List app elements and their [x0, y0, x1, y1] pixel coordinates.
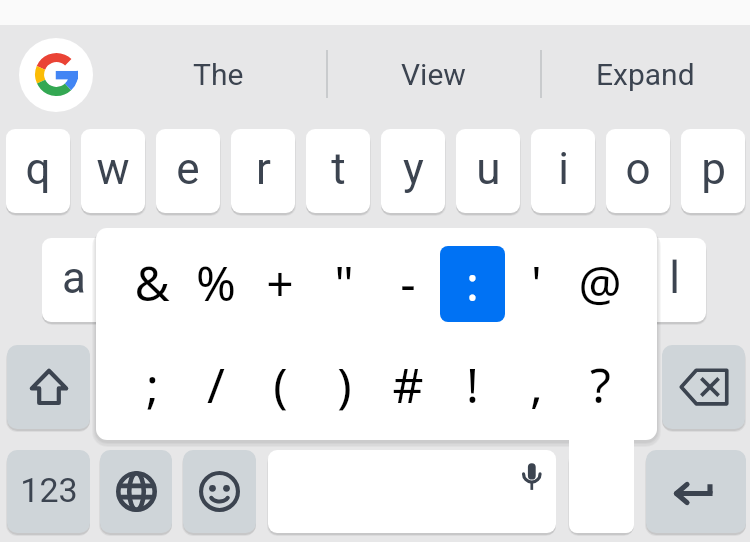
button[interactable]: h [417, 238, 481, 322]
staticText: u [476, 143, 501, 195]
button[interactable]: g [342, 238, 406, 322]
staticText: i [558, 143, 569, 195]
button[interactable]: Expand [540, 32, 750, 118]
button[interactable]: ( [248, 336, 312, 436]
button[interactable]: Google [19, 38, 93, 112]
button[interactable]: z [117, 345, 181, 429]
staticText: ' [531, 250, 542, 315]
staticText: ) [337, 352, 352, 417]
staticText: ! [466, 352, 479, 417]
button[interactable]: Backspace [662, 345, 745, 429]
button[interactable]: y [381, 129, 445, 213]
button[interactable]: e [156, 129, 220, 213]
button[interactable]: n [492, 345, 556, 429]
staticText: ( [273, 352, 288, 417]
staticText: Expand [596, 57, 695, 92]
button[interactable]: ) [312, 336, 376, 436]
staticText: d [212, 252, 237, 304]
button[interactable]: d [192, 238, 256, 322]
staticText: q [25, 143, 51, 195]
button[interactable]: ; [120, 336, 184, 436]
button[interactable] [440, 246, 505, 322]
button[interactable]: u [456, 129, 520, 213]
button[interactable]: a [42, 238, 106, 322]
button[interactable]: ! [440, 336, 504, 436]
button[interactable]: @ [568, 234, 632, 334]
button[interactable]: q [6, 129, 70, 213]
button[interactable]: o [606, 129, 670, 213]
button[interactable]: b [417, 345, 481, 429]
staticText: ; [146, 352, 159, 417]
other: Voice input [521, 462, 543, 491]
button[interactable]: ? [568, 336, 632, 436]
button[interactable]: ' [504, 234, 568, 334]
staticText: t [331, 143, 346, 195]
button[interactable]: Space [268, 450, 556, 533]
button[interactable]: Change language [100, 450, 172, 533]
button[interactable]: p [681, 129, 745, 213]
staticText: % [196, 250, 236, 315]
button[interactable]: View [328, 32, 538, 118]
button[interactable]: Enter [646, 450, 746, 533]
button[interactable]: Shift [7, 345, 90, 429]
button[interactable]: r [231, 129, 295, 213]
staticText: m [580, 359, 619, 411]
staticText: k [588, 252, 611, 304]
staticText: z [138, 359, 160, 411]
button[interactable]: Emoji [183, 450, 256, 533]
button[interactable]: s [117, 238, 181, 322]
staticText: / [207, 352, 225, 417]
staticText: h [437, 252, 462, 304]
button[interactable]: c [267, 345, 331, 429]
button[interactable]: + [248, 234, 312, 334]
button[interactable]: t [306, 129, 370, 213]
button[interactable]: f [267, 238, 331, 322]
staticText: y [403, 143, 424, 195]
staticText: n [512, 359, 537, 411]
staticText: , [530, 352, 543, 417]
button[interactable]: Symbols [7, 450, 90, 533]
staticText: 123 [20, 470, 78, 510]
button[interactable]: / [184, 336, 248, 436]
button[interactable]: i [531, 129, 595, 213]
button[interactable]: , [504, 336, 568, 436]
button[interactable]: l [642, 238, 706, 322]
staticText: a [62, 252, 86, 304]
button[interactable]: % [184, 234, 248, 334]
staticText: - [400, 250, 416, 315]
staticText: e [176, 143, 200, 195]
button[interactable]: & [120, 234, 184, 334]
staticText: p [701, 143, 726, 195]
button[interactable]: # [376, 336, 440, 436]
staticText: The [193, 57, 244, 92]
button[interactable]: The [113, 32, 323, 118]
button[interactable]: : [440, 234, 504, 334]
staticText: @ [578, 250, 622, 315]
staticText: + [266, 250, 294, 315]
button[interactable]: m [567, 345, 631, 429]
button[interactable]: x [192, 345, 256, 429]
button[interactable]: - [376, 234, 440, 334]
staticText: ? [590, 352, 611, 417]
staticText: View [401, 57, 466, 92]
button[interactable]: j [492, 238, 556, 322]
staticText: r [256, 143, 271, 195]
staticText: : [466, 250, 479, 315]
staticText: " [334, 250, 354, 315]
staticText: x [213, 359, 235, 411]
staticText: s [138, 252, 161, 304]
button[interactable]: k [567, 238, 631, 322]
staticText: o [625, 143, 651, 195]
button[interactable]: w [81, 129, 145, 213]
button[interactable]: v [342, 345, 406, 429]
button[interactable]: " [312, 234, 376, 334]
staticText: # [392, 352, 424, 417]
staticText: & [134, 250, 170, 315]
staticText: w [96, 143, 130, 195]
